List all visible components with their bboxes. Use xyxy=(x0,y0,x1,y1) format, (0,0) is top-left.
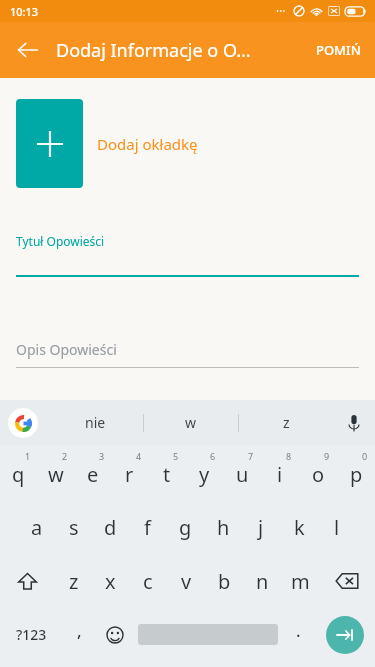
button[interactable]: Back xyxy=(0,22,56,78)
staticText: a xyxy=(31,514,43,541)
staticText: v xyxy=(181,568,192,595)
staticText: Opis Opowieści xyxy=(16,340,117,359)
button[interactable]: Dodaj okładkę xyxy=(16,99,83,188)
staticText: i xyxy=(277,461,283,488)
staticText: r xyxy=(125,461,134,488)
staticText: l xyxy=(334,514,340,541)
button[interactable]: q xyxy=(0,445,37,500)
staticText: q xyxy=(12,461,25,488)
button[interactable]: c xyxy=(129,555,167,607)
staticText: t xyxy=(163,461,171,488)
staticText: p xyxy=(350,461,363,488)
staticText: Dodaj Informacje o O... xyxy=(56,38,302,63)
staticText: e xyxy=(87,461,99,488)
button[interactable]: j xyxy=(242,500,280,555)
button[interactable]: Dodaj okładkę xyxy=(97,134,198,154)
button[interactable]: Backspace xyxy=(319,555,375,607)
staticText: ?123 xyxy=(16,625,47,644)
staticText: d xyxy=(104,514,117,541)
button[interactable]: b xyxy=(205,555,243,607)
staticText: . xyxy=(296,619,301,642)
staticText: z xyxy=(283,413,290,432)
button[interactable]: z xyxy=(239,400,333,445)
staticText: 7 xyxy=(248,450,254,462)
staticText: o xyxy=(312,461,325,488)
button[interactable]: , xyxy=(62,607,96,662)
button[interactable]: h xyxy=(204,500,242,555)
staticText: 1 xyxy=(25,450,31,462)
staticText: , xyxy=(77,619,82,642)
button[interactable]: p xyxy=(337,445,375,500)
button[interactable]: s xyxy=(55,500,92,555)
staticText: 3 xyxy=(99,450,105,462)
button[interactable]: nie xyxy=(48,400,143,445)
staticText: g xyxy=(179,514,192,541)
button[interactable]: o xyxy=(299,445,337,500)
button[interactable]: n xyxy=(243,555,281,607)
staticText: POMIŃ xyxy=(316,41,361,59)
button[interactable]: Enter xyxy=(326,616,364,654)
staticText: w xyxy=(185,413,197,432)
button[interactable]: ?123 xyxy=(0,607,62,662)
staticText: w xyxy=(48,461,64,488)
staticText: f xyxy=(144,514,151,541)
staticText: j xyxy=(258,514,264,541)
button[interactable]: . xyxy=(281,607,315,662)
button[interactable]: f xyxy=(129,500,166,555)
button[interactable]: Emoji xyxy=(96,607,134,662)
button[interactable]: e xyxy=(74,445,111,500)
button[interactable]: t xyxy=(148,445,185,500)
button[interactable]: r xyxy=(111,445,148,500)
button[interactable]: Tytuł Opowieści xyxy=(16,233,359,277)
button[interactable]: d xyxy=(92,500,129,555)
button[interactable]: Shift xyxy=(0,555,55,607)
button[interactable]: k xyxy=(280,500,318,555)
staticText: c xyxy=(143,568,153,595)
staticText: 2 xyxy=(62,450,68,462)
button[interactable]: i xyxy=(261,445,299,500)
button[interactable]: u xyxy=(223,445,261,500)
staticText: z xyxy=(69,568,79,595)
staticText: 4 xyxy=(136,450,142,462)
staticText: nie xyxy=(85,413,106,432)
button[interactable]: w xyxy=(144,400,238,445)
staticText: y xyxy=(199,461,210,488)
button[interactable]: a xyxy=(18,500,55,555)
staticText: s xyxy=(69,514,79,541)
button[interactable]: g xyxy=(166,500,204,555)
staticText: k xyxy=(294,514,305,541)
button[interactable]: y xyxy=(185,445,223,500)
staticText: Tytuł Opowieści xyxy=(16,233,105,249)
button[interactable]: z xyxy=(55,555,92,607)
button[interactable]: Opis Opowieści xyxy=(16,340,359,368)
staticText: 0 xyxy=(362,450,368,462)
staticText: 9 xyxy=(324,450,330,462)
staticText: h xyxy=(217,514,230,541)
staticText: n xyxy=(256,568,269,595)
staticText: 5 xyxy=(173,450,179,462)
button[interactable]: l xyxy=(318,500,356,555)
staticText: 10:13 xyxy=(10,4,39,19)
staticText: 6 xyxy=(210,450,216,462)
button[interactable]: v xyxy=(167,555,205,607)
button[interactable]: m xyxy=(281,555,319,607)
button[interactable]: x xyxy=(92,555,129,607)
button[interactable]: Google xyxy=(8,408,38,438)
button[interactable]: w xyxy=(37,445,74,500)
staticText: b xyxy=(218,568,231,595)
staticText: 8 xyxy=(286,450,292,462)
staticText: m xyxy=(291,568,310,595)
button[interactable]: POMIŃ xyxy=(302,22,375,78)
staticText: x xyxy=(105,568,116,595)
staticText: u xyxy=(236,461,249,488)
button[interactable]: Voice input xyxy=(333,400,375,445)
